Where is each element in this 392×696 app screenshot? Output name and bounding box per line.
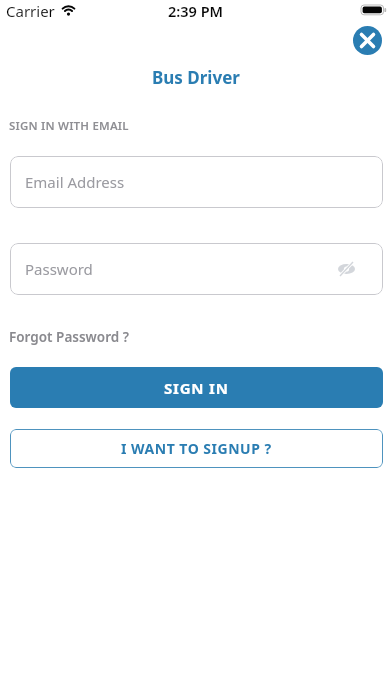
button[interactable]: SIGN IN: [10, 367, 383, 408]
button[interactable]: Forgot Password ?: [9, 328, 129, 346]
staticText: SIGN IN: [164, 378, 229, 398]
staticText: Email Address: [25, 172, 125, 192]
staticText: I WANT TO SIGNUP ?: [121, 439, 272, 458]
staticText: Password: [25, 259, 93, 279]
staticText: Bus Driver: [152, 66, 240, 89]
button[interactable]: Password: [10, 243, 383, 295]
staticText: 2:39 PM: [168, 1, 224, 21]
staticText: SIGN IN WITH EMAIL: [9, 118, 129, 134]
staticText: Carrier: [6, 1, 55, 21]
button[interactable]: Email Address: [10, 156, 383, 208]
button[interactable]: [353, 26, 382, 55]
button[interactable]: I WANT TO SIGNUP ?: [10, 429, 383, 468]
